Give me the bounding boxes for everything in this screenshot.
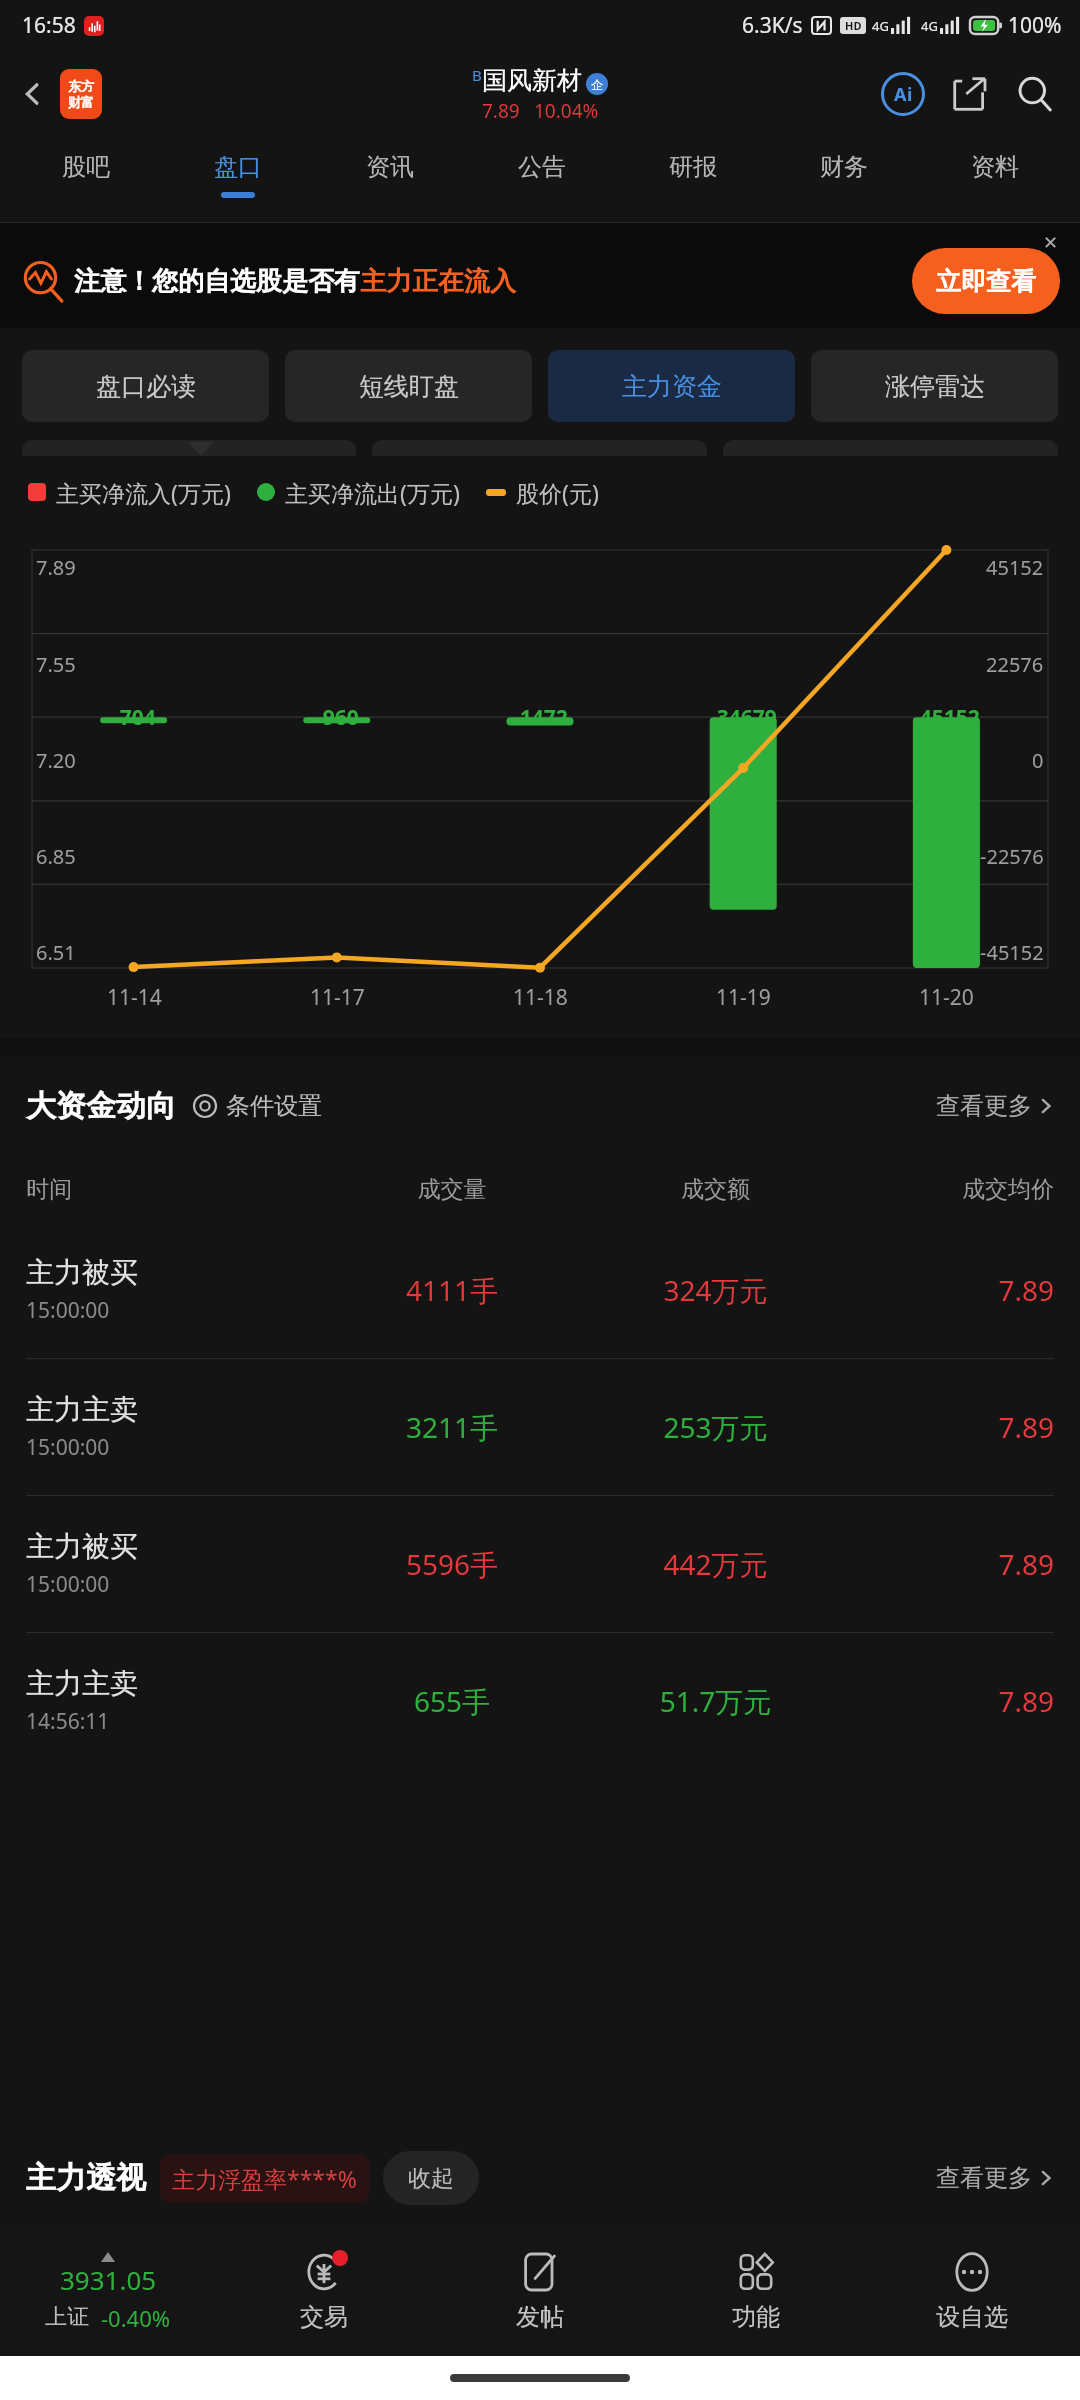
staticText: 主买净流出(万元) — [285, 477, 460, 508]
staticText: 设自选 — [936, 2302, 1008, 2332]
staticText: 查看更多 — [936, 1091, 1032, 1121]
staticText: 交易 — [300, 2302, 348, 2332]
staticText: 发帖 — [516, 2302, 564, 2332]
button[interactable]: 交易 — [216, 2228, 432, 2356]
button[interactable]: 主力主卖 — [26, 1359, 1054, 1495]
button[interactable]: 主力被买 — [26, 1222, 1054, 1358]
staticText: 45152 — [986, 554, 1044, 581]
staticText: 成交均价 — [841, 1175, 1054, 1204]
staticText: 时间 — [26, 1175, 314, 1204]
staticText: 4G — [921, 17, 938, 35]
staticText: 公告 — [518, 152, 566, 182]
staticText: 功能 — [732, 2302, 780, 2332]
staticText: 成交量 — [314, 1175, 590, 1204]
button[interactable]: 盘口 — [162, 138, 314, 223]
staticText: 11-14 — [107, 983, 162, 1012]
staticText: 主力主卖 — [26, 1392, 138, 1427]
button[interactable]: 3931.05 — [0, 2228, 216, 2356]
button[interactable]: 条件设置 — [192, 1091, 322, 1121]
button[interactable]: 立即查看 — [912, 248, 1060, 314]
staticText: A — [894, 82, 907, 107]
staticText: 655手 — [314, 1682, 590, 1720]
button[interactable]: 设自选 — [864, 2228, 1080, 2356]
button[interactable]: 盘口必读 — [22, 350, 269, 422]
staticText: 财富 — [68, 94, 94, 110]
staticText: -0.40% — [101, 2303, 171, 2333]
staticText: 7.55 — [36, 651, 76, 678]
staticText: 15:00:00 — [26, 1433, 110, 1462]
staticText: 7.89 — [841, 1682, 1054, 1720]
staticText: 11-20 — [919, 983, 974, 1012]
button[interactable]: 股吧 — [10, 138, 162, 223]
button[interactable]: 功能 — [648, 2228, 864, 2356]
button[interactable]: 主力浮盈率****% — [172, 2163, 357, 2194]
button[interactable]: AI — [876, 67, 930, 121]
staticText: 短线盯盘 — [359, 371, 459, 402]
staticText: 主力主卖 — [26, 1666, 138, 1701]
button[interactable]: 短线盯盘 — [285, 350, 532, 422]
button[interactable]: 主力被买 — [26, 1496, 1054, 1632]
button[interactable]: East Money — [60, 69, 102, 119]
staticText: HD — [845, 18, 862, 33]
staticText: 成交额 — [590, 1175, 841, 1204]
staticText: 324万元 — [590, 1271, 841, 1309]
button[interactable]: 主力主卖 — [26, 1633, 1054, 1769]
staticText: 7.89 — [841, 1545, 1054, 1583]
button[interactable]: Share — [942, 67, 996, 121]
button[interactable]: 公告 — [466, 138, 617, 223]
staticText: 100% — [1008, 11, 1062, 40]
button[interactable]: 收起 — [383, 2151, 479, 2205]
staticText: 5596手 — [314, 1545, 590, 1583]
staticText: 16:58 — [22, 11, 76, 40]
staticText: 6.85 — [36, 843, 76, 870]
staticText: 主买净流入(万元) — [56, 477, 231, 508]
staticText: 7.89 — [841, 1408, 1054, 1446]
button[interactable]: Search — [1008, 67, 1062, 121]
staticText: 注意！您的自选股是否有 — [74, 265, 360, 298]
staticText: 4111手 — [314, 1271, 590, 1309]
staticText: 11-19 — [716, 983, 771, 1012]
staticText: 主力资金 — [622, 371, 722, 402]
staticText: -704 — [113, 703, 156, 732]
button[interactable]: 研报 — [617, 138, 768, 223]
button[interactable]: 财务 — [768, 138, 919, 223]
staticText: 14:56:11 — [26, 1707, 110, 1736]
staticText: -45152 — [980, 939, 1044, 966]
button[interactable]: Back — [10, 71, 56, 117]
staticText: 查看更多 — [936, 2163, 1032, 2193]
staticText: 股吧 — [62, 152, 110, 182]
staticText: 东方 — [68, 78, 94, 94]
staticText: 收起 — [408, 2164, 454, 2193]
staticText: 6.51 — [36, 939, 76, 966]
staticText: 15:00:00 — [26, 1570, 110, 1599]
staticText: -34679 — [710, 703, 777, 732]
button[interactable]: 资讯 — [314, 138, 466, 223]
staticText: i — [907, 82, 913, 107]
button[interactable]: 发帖 — [432, 2228, 648, 2356]
staticText: 主力浮盈率****% — [172, 2163, 357, 2194]
staticText: 51.7万元 — [590, 1682, 841, 1720]
button[interactable]: 主力资金 — [548, 350, 795, 422]
staticText: 涨停雷达 — [885, 371, 985, 402]
staticText: 资料 — [971, 152, 1019, 182]
staticText: 15:00:00 — [26, 1296, 110, 1325]
staticText: 企 — [591, 77, 603, 92]
staticText: 11-18 — [513, 983, 568, 1012]
staticText: ✕ — [1043, 232, 1059, 253]
staticText: 0 — [1032, 747, 1044, 774]
button[interactable]: Close — [1034, 225, 1068, 259]
button[interactable]: 查看更多 — [936, 1091, 1054, 1121]
staticText: -960 — [316, 703, 359, 732]
staticText: 盘口必读 — [96, 371, 196, 402]
staticText: 7.89 — [36, 554, 76, 581]
button[interactable]: 资料 — [919, 138, 1070, 223]
staticText: -22576 — [980, 843, 1044, 870]
staticText: B — [472, 65, 482, 85]
button[interactable]: 涨停雷达 — [811, 350, 1058, 422]
button[interactable]: 查看更多 — [936, 2163, 1054, 2193]
staticText: 3931.05 — [60, 2262, 157, 2297]
staticText: 主力被买 — [26, 1255, 138, 1290]
staticText: 大资金动向 — [26, 1087, 176, 1125]
staticText: 10.04% — [534, 98, 599, 124]
staticText: 财务 — [820, 152, 868, 182]
